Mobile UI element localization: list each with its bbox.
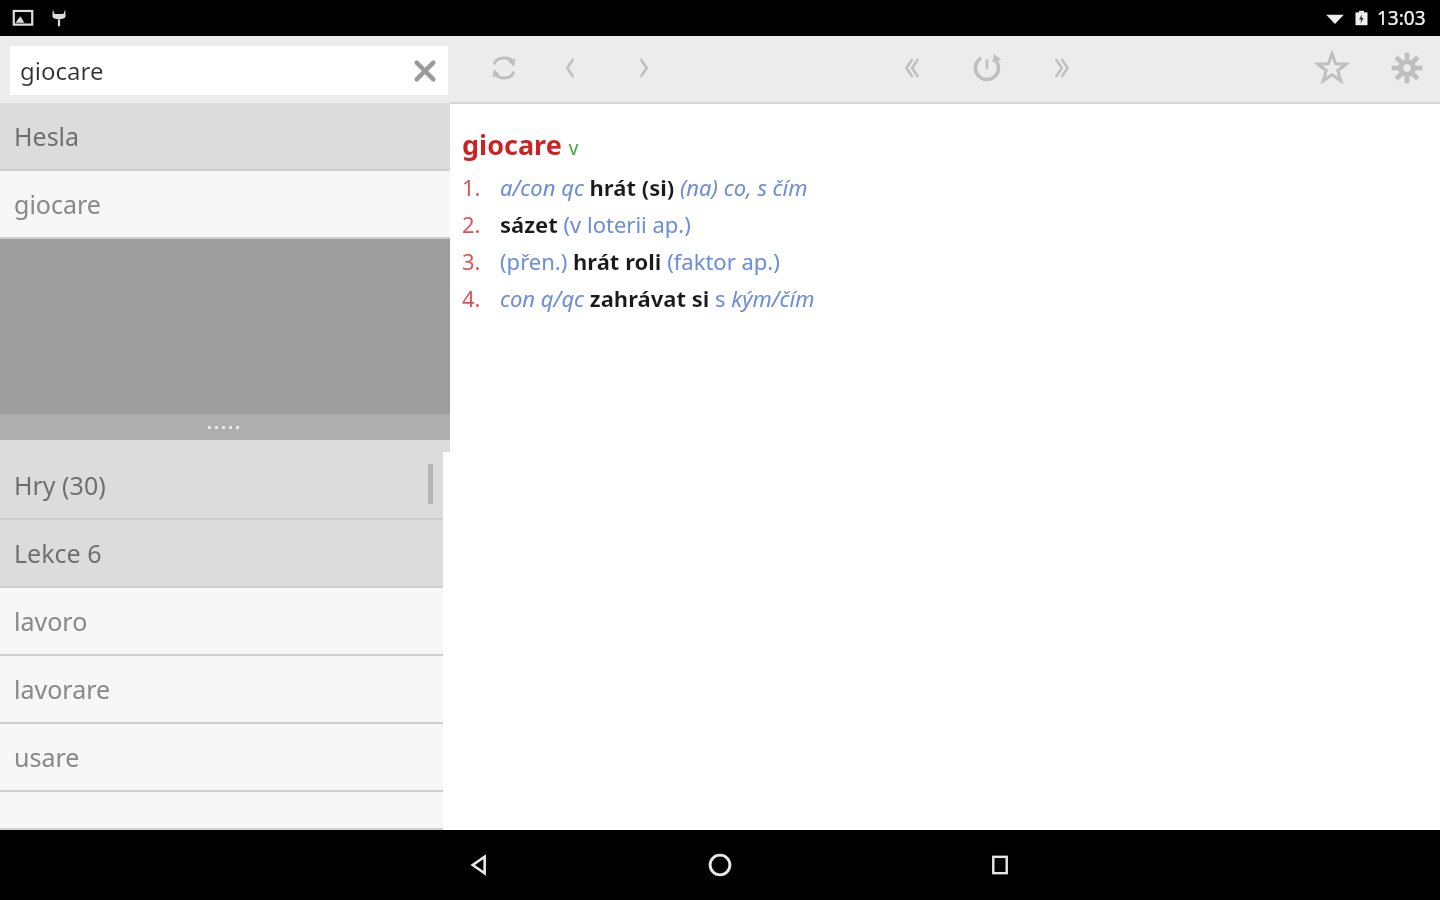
- staticText: giocare: [14, 187, 101, 221]
- button[interactable]: Favorite: [1300, 36, 1364, 100]
- button[interactable]: Settings: [1375, 36, 1439, 100]
- staticText: 13:03: [1377, 5, 1426, 31]
- staticText: 2.: [462, 209, 500, 239]
- staticText: lavorare: [14, 672, 111, 706]
- staticText: 3.: [462, 246, 500, 276]
- button[interactable]: Swap languages: [472, 36, 536, 100]
- staticText: Hesla: [14, 119, 80, 153]
- staticText: sázet (v loterii ap.): [500, 209, 691, 239]
- button[interactable]: Previous: [538, 36, 602, 100]
- button[interactable]: giocare: [10, 46, 448, 95]
- button[interactable]: Back: [440, 830, 520, 900]
- staticText: lavoro: [14, 604, 88, 638]
- button[interactable]: Last: [1030, 36, 1094, 100]
- staticText: Lekce 6: [14, 536, 102, 570]
- button[interactable]: giocare: [0, 171, 450, 237]
- button[interactable]: Clear search: [402, 48, 448, 94]
- button[interactable]: Lekce 6: [0, 520, 450, 586]
- button[interactable]: Next: [612, 36, 676, 100]
- button[interactable]: 4.: [462, 283, 1440, 313]
- button[interactable]: Recent apps: [960, 830, 1040, 900]
- button[interactable]: Refresh: [955, 36, 1019, 100]
- button[interactable]: Hesla: [0, 103, 450, 169]
- staticText: a/con qc hrát (si) (na) co, s čím: [500, 172, 808, 202]
- button[interactable]: lavorare: [0, 656, 450, 722]
- button[interactable]: Home: [680, 830, 760, 900]
- button[interactable]: First: [880, 36, 944, 100]
- button[interactable]: lavoro: [0, 588, 450, 654]
- staticText: con q/qc zahrávat si s kým/čím: [500, 283, 815, 313]
- staticText: Hry (30): [14, 468, 106, 502]
- button[interactable]: 2.: [462, 209, 1440, 239]
- button[interactable]: Hry (30): [0, 452, 450, 518]
- staticText: 1.: [462, 172, 500, 202]
- staticText: giocare: [20, 54, 402, 87]
- staticText: usare: [14, 740, 80, 774]
- staticText: 4.: [462, 283, 500, 313]
- button[interactable]: 3.: [462, 246, 1440, 276]
- staticText: giocare v: [462, 126, 579, 163]
- staticText: (přen.) hrát roli (faktor ap.): [500, 246, 780, 276]
- button[interactable]: 1.: [462, 172, 1440, 202]
- button[interactable]: usare: [0, 724, 450, 790]
